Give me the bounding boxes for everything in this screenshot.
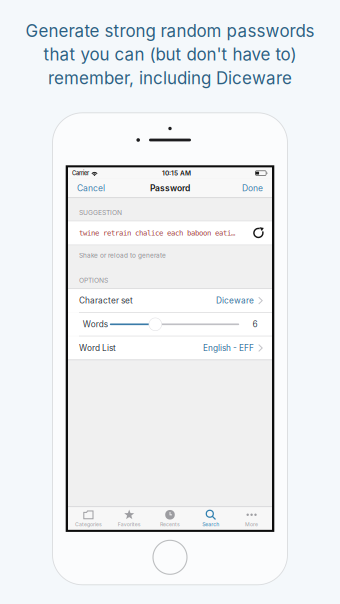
staticText: Generate strong random passwords [25, 21, 314, 41]
staticText: Word List [79, 343, 116, 353]
staticText: Character set [79, 296, 133, 306]
staticText: 10:15 AM [162, 169, 191, 177]
staticText: More [245, 521, 258, 528]
staticText: Words [83, 319, 108, 329]
staticText: SUGGESTION [79, 209, 122, 217]
staticText: Password [150, 183, 190, 193]
staticText: Categories [75, 521, 102, 528]
button[interactable]: Word List [68, 336, 272, 359]
button[interactable]: More [231, 507, 272, 529]
staticText: OPTIONS [79, 276, 108, 284]
staticText: Diceware [216, 296, 254, 306]
button[interactable]: Done [234, 179, 272, 198]
staticText: Search [202, 521, 219, 528]
staticText: that you can (but don't have to) [43, 44, 296, 65]
staticText: Shake or reload to generate [79, 251, 166, 259]
button[interactable]: Favorites [109, 507, 150, 529]
button[interactable]: Recents [150, 507, 190, 529]
button[interactable]: Character set [68, 289, 272, 312]
button[interactable]: Reload password [250, 223, 267, 244]
button[interactable]: Categories [68, 507, 109, 529]
staticText: remember, including Diceware [48, 68, 292, 88]
staticText: Carrier [72, 170, 89, 176]
staticText: 6 [252, 319, 257, 329]
button[interactable]: Search [190, 507, 231, 529]
button[interactable]: Cancel [68, 179, 113, 198]
staticText: Recents [160, 521, 180, 528]
staticText: Cancel [77, 183, 105, 193]
staticText: Favorites [118, 521, 141, 528]
staticText: Done [242, 183, 263, 193]
staticText: English - EFF [203, 343, 254, 353]
staticText: twine retrain chalice each baboon eati… [79, 229, 235, 237]
